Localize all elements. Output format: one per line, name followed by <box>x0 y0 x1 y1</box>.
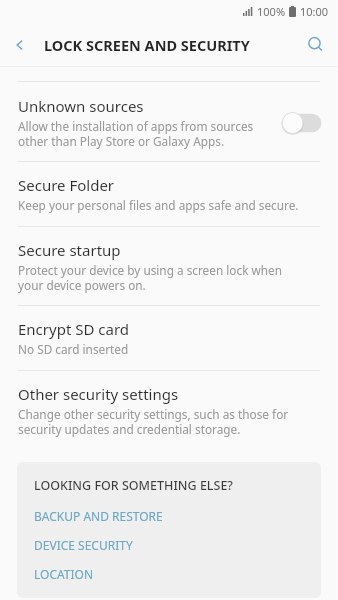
staticText: Protect your device by using a screen lo… <box>18 262 283 293</box>
staticText: Allow the installation of apps from sour… <box>18 118 254 149</box>
staticText: DEVICE SECURITY <box>34 537 133 553</box>
button[interactable]: Other security settings <box>0 371 338 449</box>
staticText: No SD card inserted <box>18 341 129 357</box>
button[interactable]: Secure startup <box>0 227 338 305</box>
button[interactable]: Unknown sources toggle <box>280 111 324 135</box>
button[interactable]: Secure Folder <box>0 162 338 226</box>
button[interactable]: LOCATION <box>34 566 307 582</box>
staticText: Unknown sources <box>18 96 144 116</box>
button[interactable]: Search <box>292 22 338 67</box>
button[interactable]: DEVICE SECURITY <box>34 537 307 553</box>
button[interactable]: Unknown sources <box>0 82 338 161</box>
button[interactable]: BACKUP AND RESTORE <box>34 508 307 524</box>
staticText: 10:00 <box>300 4 329 19</box>
button[interactable]: Back <box>0 23 44 67</box>
staticText: Secure startup <box>18 240 121 260</box>
staticText: BACKUP AND RESTORE <box>34 508 163 524</box>
staticText: LOCATION <box>34 566 94 582</box>
button[interactable]: Encrypt SD card <box>0 306 338 370</box>
staticText: LOCK SCREEN AND SECURITY <box>44 35 250 55</box>
staticText: Other security settings <box>18 384 179 404</box>
staticText: Change other security settings, such as … <box>18 406 289 437</box>
staticText: Keep your personal files and apps safe a… <box>18 197 299 213</box>
staticText: LOOKING FOR SOMETHING ELSE? <box>34 477 233 494</box>
staticText: 100% <box>257 4 286 19</box>
staticText: Encrypt SD card <box>18 319 130 339</box>
staticText: Secure Folder <box>18 175 115 195</box>
